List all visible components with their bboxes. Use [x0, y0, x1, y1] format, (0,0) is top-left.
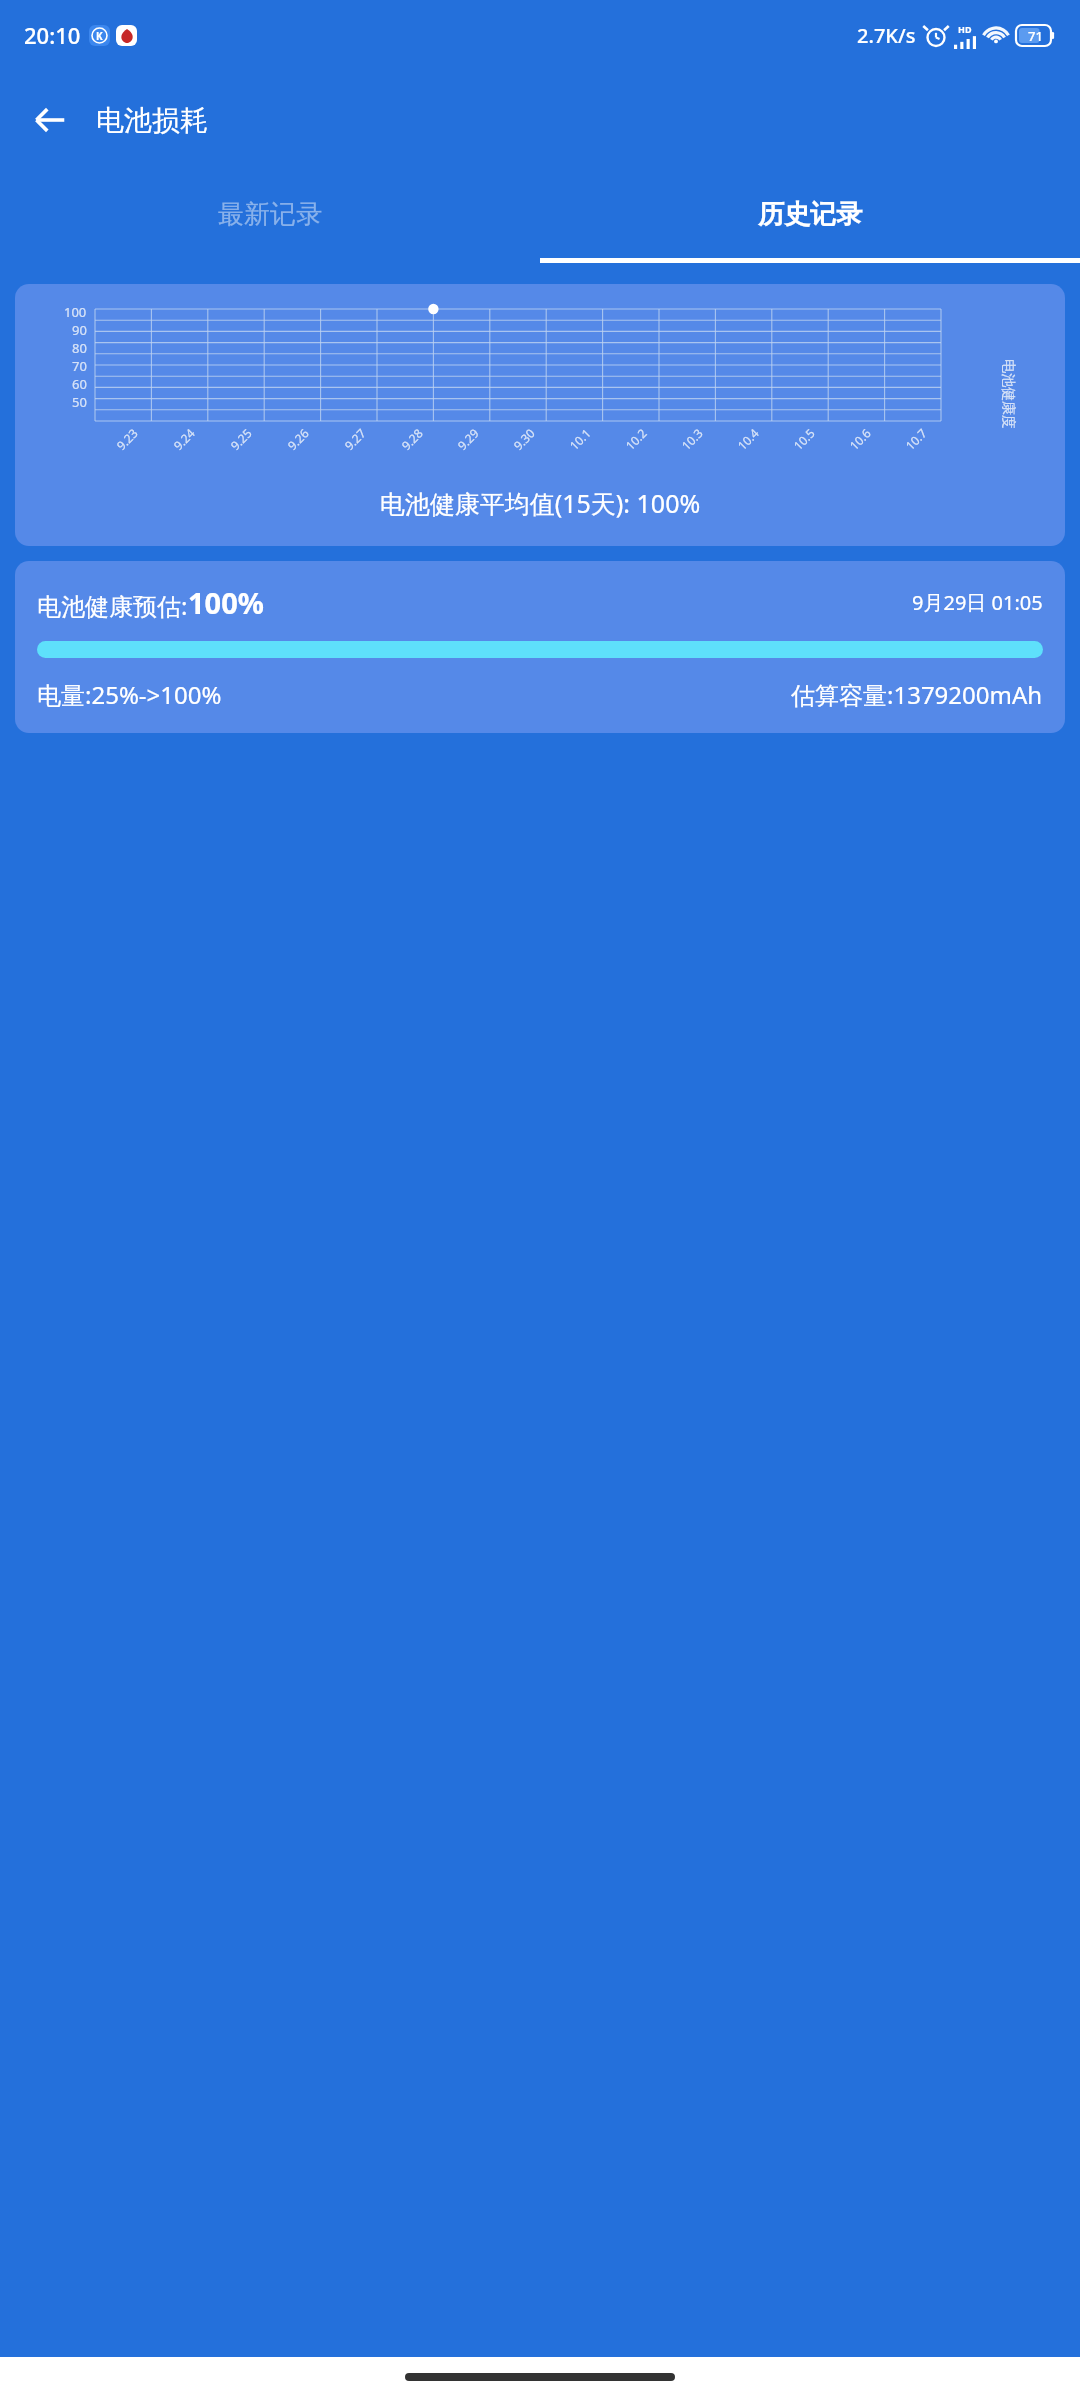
staticText: 20:10 — [24, 20, 81, 50]
staticText: 电量:25%->100% — [37, 678, 222, 711]
staticText: 10.1 — [566, 425, 594, 453]
staticText: 电池健康度 — [999, 359, 1017, 429]
staticText: 10.3 — [678, 425, 706, 453]
staticText: 9.25 — [227, 425, 255, 453]
staticText: 9.30 — [510, 425, 538, 453]
staticText: 50 — [72, 393, 87, 411]
staticText: 9.29 — [454, 425, 482, 453]
staticText: 9月29日 01:05 — [912, 589, 1043, 616]
staticText: 9.23 — [113, 425, 141, 453]
staticText: 9.28 — [398, 425, 426, 453]
staticText: 100% — [188, 583, 264, 622]
button[interactable]: Back — [18, 88, 82, 152]
staticText: 60 — [72, 375, 87, 393]
staticText: 电池损耗 — [96, 103, 208, 138]
staticText: 70 — [72, 357, 87, 375]
button[interactable]: 100 — [15, 284, 1065, 546]
staticText: 估算容量:1379200mAh — [791, 678, 1043, 711]
staticText: 9.26 — [284, 425, 312, 453]
staticText: 90 — [72, 321, 87, 339]
staticText: 电池健康平均值(15天): 100% — [15, 486, 1065, 520]
staticText: K — [96, 29, 103, 43]
staticText: 2.7K/s — [857, 22, 916, 49]
button[interactable]: 电池健康预估: — [15, 561, 1065, 733]
staticText: 10.7 — [902, 425, 930, 453]
button[interactable]: 最新记录 — [0, 170, 540, 258]
staticText: 10.2 — [622, 425, 650, 453]
staticText: 10.5 — [790, 425, 818, 453]
staticText: 电池健康预估: — [37, 589, 188, 622]
staticText: 历史记录 — [758, 198, 862, 231]
staticText: 71 — [1028, 27, 1043, 45]
staticText: 9.24 — [170, 425, 198, 453]
staticText: HD — [958, 23, 972, 35]
staticText: 最新记录 — [218, 198, 322, 231]
staticText: 9.27 — [341, 425, 369, 453]
staticText: 10.6 — [846, 425, 874, 453]
staticText: 80 — [72, 339, 87, 357]
staticText: 100 — [64, 303, 87, 321]
button[interactable]: 历史记录 — [540, 170, 1080, 258]
staticText: 10.4 — [734, 425, 762, 453]
